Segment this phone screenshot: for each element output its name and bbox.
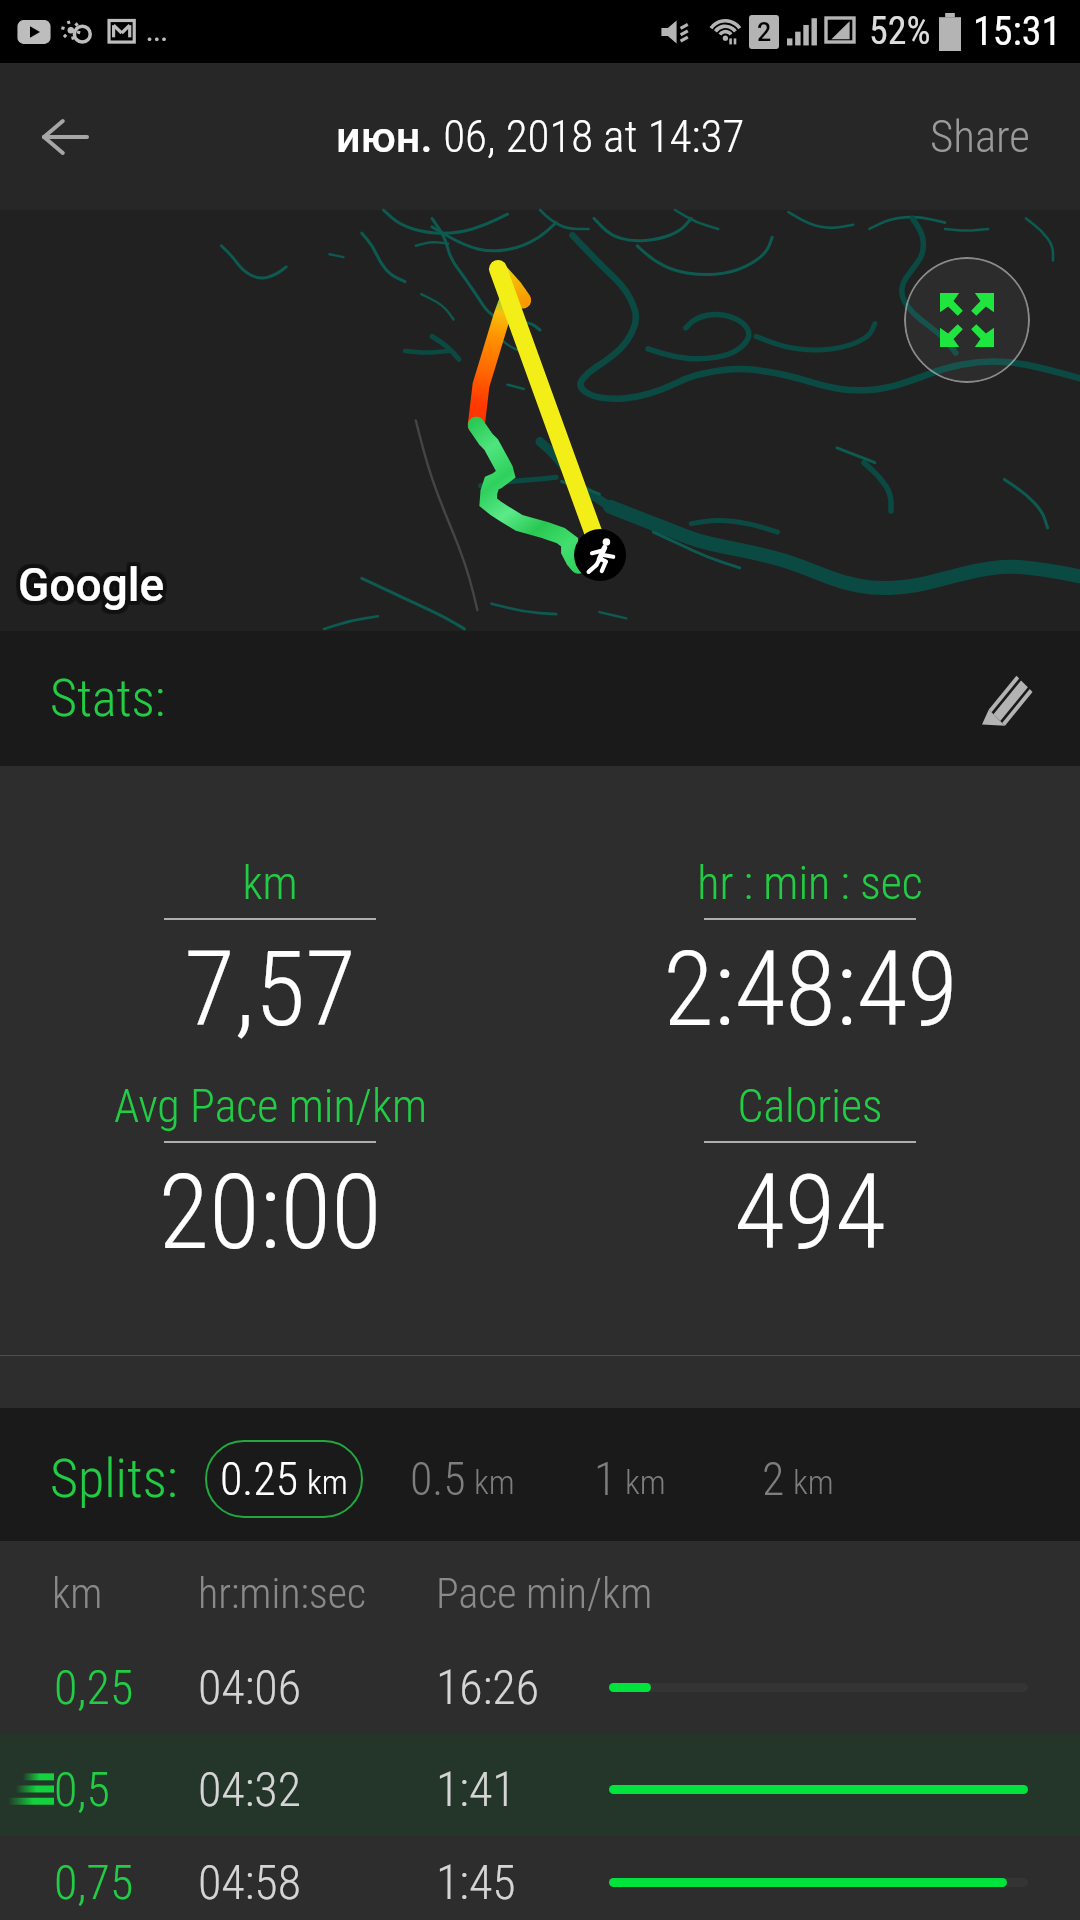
staticText: Calories [737, 1079, 883, 1133]
button[interactable]: 0,75 [0, 1836, 1080, 1920]
button[interactable]: 0.25 [205, 1440, 363, 1518]
staticText: 04:32 [198, 1761, 436, 1817]
staticText: Google [18, 554, 165, 608]
button[interactable]: Back [0, 63, 130, 210]
staticText: km [474, 1462, 515, 1502]
staticText: 20:00 [158, 1152, 382, 1274]
button[interactable]: Share [898, 63, 1080, 210]
staticText: 0,25 [54, 1659, 134, 1715]
staticText: 0,75 [54, 1854, 134, 1910]
staticText: Google [20, 558, 167, 612]
staticText: Google [22, 556, 169, 610]
staticText: Google [14, 558, 161, 612]
staticText: 2 [762, 1452, 785, 1506]
staticText: km [307, 1462, 348, 1502]
staticText: Google [14, 562, 161, 616]
staticText: 1:41 [436, 1761, 609, 1817]
staticText: 7,57 [184, 929, 356, 1051]
staticText: 04:58 [198, 1854, 436, 1910]
staticText: km [793, 1462, 834, 1502]
button[interactable]: 0.5 [392, 1440, 533, 1518]
staticText: Google [18, 562, 165, 616]
staticText: Google [14, 556, 161, 610]
staticText: 1:45 [436, 1854, 609, 1910]
button[interactable]: 1 [576, 1440, 684, 1518]
staticText: Google [22, 554, 169, 608]
staticText: Google [22, 562, 169, 616]
button[interactable]: 2 [744, 1440, 852, 1518]
staticText: Google [14, 554, 161, 608]
staticText: Google [16, 554, 163, 608]
button[interactable]: Expand map [904, 257, 1030, 383]
staticText: 2 [757, 18, 772, 47]
staticText: 0,5 [54, 1761, 110, 1817]
staticText: Google [18, 560, 165, 614]
staticText: Google [16, 560, 163, 614]
staticText: Splits: [50, 1447, 178, 1510]
button[interactable]: 0,25 [0, 1632, 1080, 1734]
staticText: июн. [336, 112, 433, 162]
staticText: hr:min:sec [198, 1569, 436, 1618]
staticText: Google [20, 560, 167, 614]
staticText: Google [20, 556, 167, 610]
staticText: Stats: [50, 668, 166, 729]
staticText: 52% [869, 9, 931, 54]
staticText: 16:26 [436, 1659, 609, 1715]
staticText: 494 [734, 1152, 886, 1274]
staticText: 04:06 [198, 1659, 436, 1715]
staticText: km [625, 1462, 666, 1502]
button[interactable]: Edit stats [966, 657, 1042, 733]
staticText: Google [16, 562, 163, 616]
staticText: Share [930, 110, 1030, 163]
staticText: Google [22, 558, 169, 612]
staticText: Google [14, 560, 161, 614]
staticText: Google [16, 556, 163, 610]
staticText: 15:31 [973, 8, 1062, 55]
staticText: Avg Pace min/km [114, 1079, 427, 1133]
staticText: km [242, 856, 298, 910]
staticText: Google [16, 558, 163, 612]
staticText: 2:48:49 [663, 929, 958, 1051]
staticText: Google [18, 556, 165, 610]
staticText: Google [22, 560, 169, 614]
staticText: 0.25 [220, 1452, 299, 1506]
staticText: 1 [594, 1452, 617, 1506]
staticText: Google [20, 562, 167, 616]
button[interactable]: 0,5 [0, 1734, 1080, 1836]
staticText: Google [18, 558, 165, 612]
staticText: Google [20, 554, 167, 608]
staticText: 06, 2018 at 14:37 [433, 110, 745, 163]
staticText: 0.5 [410, 1452, 466, 1506]
staticText: km [52, 1569, 198, 1618]
staticText: hr : min : sec [697, 856, 923, 910]
staticText: ... [146, 17, 168, 47]
staticText: Pace min/km [436, 1569, 653, 1618]
